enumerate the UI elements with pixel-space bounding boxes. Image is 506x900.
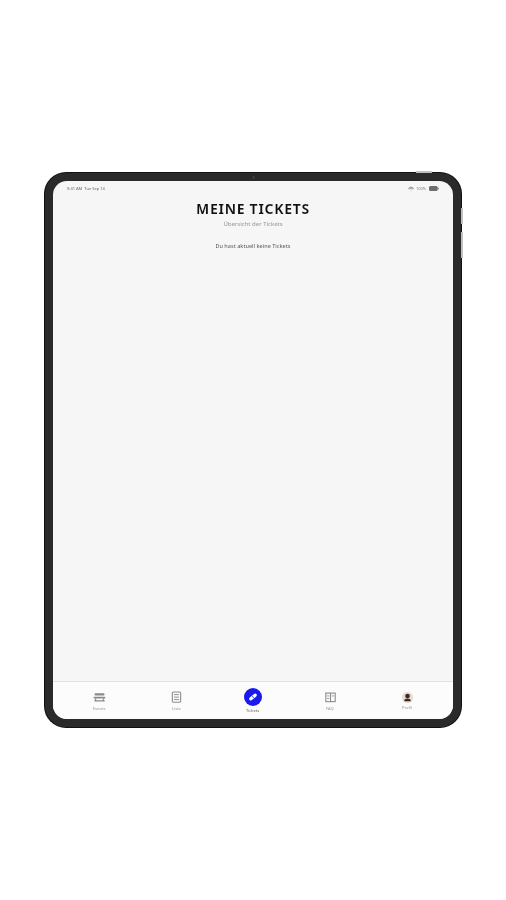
other: Liste xyxy=(170,691,183,704)
staticText: FAQ xyxy=(326,706,334,711)
staticText: 9:41 AM Tue Sep 14 xyxy=(67,186,105,191)
staticText: Übersicht der Tickets xyxy=(223,220,283,228)
staticText: 100% xyxy=(416,186,427,191)
other: Profil xyxy=(402,692,413,703)
button[interactable]: Profil xyxy=(376,682,438,719)
button[interactable]: Events xyxy=(68,682,130,719)
staticText: Du hast aktuell keine Tickets xyxy=(215,242,291,249)
staticText: Liste xyxy=(172,706,181,711)
other: FAQ xyxy=(324,691,337,704)
other: Events xyxy=(93,691,106,704)
staticText: Events xyxy=(93,706,106,711)
staticText: Profil xyxy=(402,705,412,710)
other: Tickets xyxy=(244,688,262,706)
staticText: Tickets xyxy=(246,708,260,713)
button[interactable]: Tickets xyxy=(222,682,284,719)
button[interactable]: Liste xyxy=(145,682,207,719)
staticText: MEINE TICKETS xyxy=(196,199,310,218)
button[interactable]: FAQ xyxy=(299,682,361,719)
